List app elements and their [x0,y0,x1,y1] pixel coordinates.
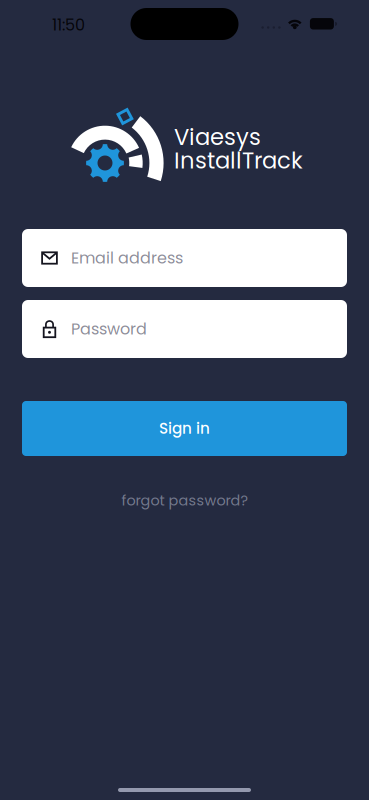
button[interactable]: forgot password? [109,484,260,517]
button[interactable]: Email address [22,229,347,287]
staticText: 11:50 [52,14,85,36]
staticText: InstallTrack [174,145,303,176]
staticText: forgot password? [121,490,248,511]
button[interactable]: Sign in [22,401,347,456]
staticText: Password [71,318,147,340]
staticText: Sign in [159,418,210,439]
staticText: Viaesys [174,121,261,153]
button[interactable]: Password [22,300,347,358]
staticText: Email address [71,247,183,269]
